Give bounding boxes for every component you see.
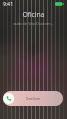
staticText: audio de Voip Duocom...	[13, 21, 54, 26]
staticText: 9:41	[3, 0, 13, 8]
staticText: Deslizar	[25, 96, 40, 101]
staticText: Oficina	[22, 10, 44, 19]
button[interactable]: Deslizar	[3, 91, 63, 106]
